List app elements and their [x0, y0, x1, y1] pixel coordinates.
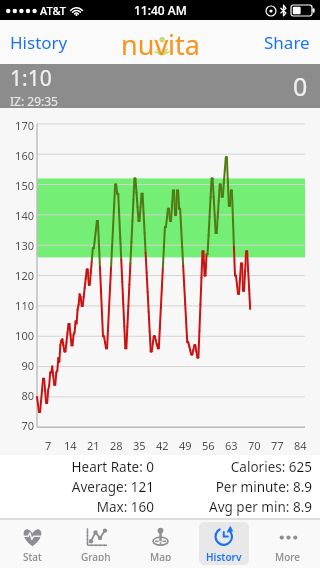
staticText: nuvita — [121, 26, 200, 58]
button[interactable]: More — [268, 522, 308, 565]
staticText: Calories: 625 — [230, 458, 312, 476]
staticText: 21 — [87, 438, 100, 453]
staticText: IZ: 29:35 — [10, 93, 58, 108]
staticText: 0 — [293, 69, 308, 103]
staticText: Avg per min: 8.9 — [209, 498, 312, 516]
staticText: 77 — [271, 438, 284, 453]
staticText: More — [275, 550, 301, 561]
staticText: Graph — [81, 550, 111, 561]
staticText: 120 — [15, 268, 34, 283]
button[interactable]: History — [199, 522, 249, 565]
staticText: 42 — [156, 438, 169, 453]
staticText: 11:40 AM — [134, 2, 187, 18]
staticText: AT&T — [40, 3, 67, 18]
button[interactable]: Stat — [13, 522, 52, 565]
staticText: Share — [264, 31, 310, 54]
staticText: 150 — [15, 178, 34, 193]
staticText: 7 — [45, 438, 52, 453]
staticText: Average: 121 — [71, 478, 154, 496]
staticText: 1:10 — [10, 64, 52, 93]
staticText: 56 — [202, 438, 215, 453]
staticText: Map — [150, 550, 172, 561]
staticText: Stat — [23, 550, 42, 561]
staticText: 130 — [15, 238, 34, 253]
button[interactable]: History — [0, 23, 78, 62]
staticText: Per minute: 8.9 — [215, 478, 312, 496]
button[interactable]: Map — [141, 522, 180, 565]
staticText: 170 — [15, 118, 34, 133]
button[interactable]: Graph — [74, 522, 118, 565]
staticText: 49 — [179, 438, 192, 453]
staticText: History — [206, 550, 242, 561]
staticText: 100 — [15, 328, 34, 343]
staticText: 28 — [110, 438, 123, 453]
staticText: 140 — [15, 208, 34, 223]
staticText: Max: 160 — [96, 498, 154, 516]
staticText: 160 — [15, 148, 34, 163]
staticText: Heart Rate: 0 — [71, 458, 154, 476]
staticText: 70 — [248, 438, 261, 453]
staticText: 80 — [21, 388, 34, 403]
staticText: 110 — [15, 298, 34, 313]
staticText: 70 — [21, 418, 34, 433]
staticText: 84 — [294, 438, 307, 453]
staticText: 35 — [133, 438, 146, 453]
button[interactable]: Share — [254, 23, 320, 62]
staticText: 63 — [225, 438, 238, 453]
staticText: History — [10, 31, 68, 54]
staticText: 14 — [64, 438, 77, 453]
staticText: 90 — [21, 358, 34, 373]
